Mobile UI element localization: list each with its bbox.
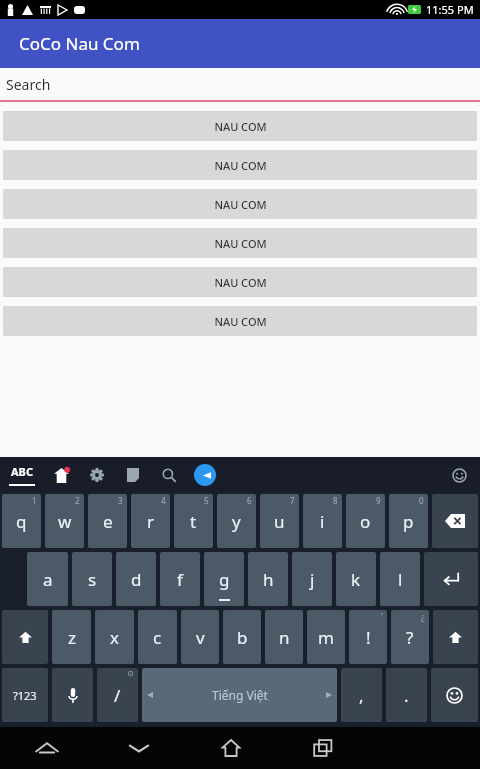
staticText: 3	[118, 495, 123, 506]
staticText: a	[43, 568, 53, 591]
button[interactable]: j	[292, 552, 332, 606]
button[interactable]: o	[346, 494, 385, 548]
button[interactable]: Backspace	[432, 494, 478, 548]
button[interactable]: Space	[142, 668, 337, 722]
staticText: NAU COM	[214, 275, 267, 290]
staticText: ABC	[11, 464, 33, 479]
staticText: NAU COM	[214, 197, 267, 212]
button[interactable]: i	[303, 494, 342, 548]
staticText: NAU COM	[214, 314, 267, 329]
button[interactable]: Voice input	[52, 668, 93, 722]
button[interactable]: s	[72, 552, 112, 606]
staticText: j	[310, 568, 315, 591]
button[interactable]: Enter	[424, 552, 478, 606]
staticText: c	[153, 626, 162, 649]
staticText: p	[403, 510, 414, 533]
button[interactable]: l	[380, 552, 420, 606]
staticText: i	[320, 510, 325, 533]
button[interactable]: a	[27, 552, 68, 606]
button[interactable]: q	[2, 494, 41, 548]
staticText: 1	[32, 495, 37, 506]
staticText: ¿	[421, 611, 425, 622]
button[interactable]: Home	[185, 727, 277, 769]
button[interactable]: c	[138, 610, 177, 664]
button[interactable]: n	[265, 610, 303, 664]
staticText: m	[318, 626, 334, 649]
staticText: Tiếng Việt	[212, 687, 268, 703]
staticText: b	[237, 626, 248, 649]
staticText: !	[366, 626, 371, 649]
staticText: 9	[376, 495, 381, 506]
button[interactable]: h	[248, 552, 288, 606]
staticText: .	[404, 684, 409, 707]
button[interactable]: Recent apps	[277, 727, 369, 769]
staticText: y	[232, 510, 241, 533]
staticText: x	[110, 626, 119, 649]
staticText: s	[88, 568, 97, 591]
staticText: t	[190, 510, 197, 533]
button[interactable]: Clipboard	[122, 464, 144, 486]
button[interactable]: Emoji	[448, 464, 470, 486]
staticText: '	[381, 611, 383, 622]
staticText: v	[196, 626, 205, 649]
staticText: 5	[204, 495, 209, 506]
button[interactable]: Voice typing	[194, 464, 216, 486]
staticText: r	[147, 510, 155, 533]
button[interactable]: g	[204, 552, 244, 606]
staticText: 0	[419, 495, 424, 506]
button[interactable]: NAU COM	[3, 228, 477, 258]
button[interactable]: d	[116, 552, 156, 606]
staticText: e	[103, 510, 113, 533]
staticText: n	[279, 626, 290, 649]
staticText: f	[177, 568, 183, 591]
button[interactable]: Shift	[2, 610, 48, 664]
button[interactable]: !	[349, 610, 387, 664]
button[interactable]: f	[160, 552, 200, 606]
button[interactable]: Search	[158, 464, 180, 486]
button[interactable]: NAU COM	[3, 189, 477, 219]
button[interactable]: w	[45, 494, 84, 548]
button[interactable]: x	[95, 610, 134, 664]
button[interactable]: t	[174, 494, 213, 548]
staticText: CoCo Nau Com	[19, 32, 140, 55]
button[interactable]: /	[97, 668, 138, 722]
staticText: g	[219, 568, 230, 591]
button[interactable]: NAU COM	[3, 306, 477, 336]
button[interactable]: NAU COM	[3, 150, 477, 180]
staticText: 8	[333, 495, 338, 506]
button[interactable]: ,	[341, 668, 382, 722]
staticText: l	[398, 568, 403, 591]
button[interactable]: u	[260, 494, 299, 548]
button[interactable]: e	[88, 494, 127, 548]
button[interactable]: Menu	[0, 727, 93, 769]
staticText: w	[58, 510, 72, 533]
staticText: q	[16, 510, 27, 533]
button[interactable]: r	[131, 494, 170, 548]
button[interactable]: Shift	[433, 610, 478, 664]
button[interactable]: Emoji keyboard	[431, 668, 478, 722]
button[interactable]: ABC	[8, 457, 36, 492]
button[interactable]: z	[52, 610, 91, 664]
button[interactable]: Hide keyboard	[93, 727, 185, 769]
button[interactable]: Stickers	[50, 464, 72, 486]
staticText: 2	[75, 495, 80, 506]
button[interactable]: .	[386, 668, 427, 722]
button[interactable]: NAU COM	[3, 111, 477, 141]
button[interactable]: Search	[0, 68, 480, 100]
button[interactable]: k	[336, 552, 376, 606]
button[interactable]: NAU COM	[3, 267, 477, 297]
button[interactable]: ?	[391, 610, 429, 664]
staticText: k	[351, 568, 361, 591]
staticText: z	[68, 626, 76, 649]
button[interactable]: b	[223, 610, 261, 664]
button[interactable]: v	[181, 610, 219, 664]
staticText: o	[360, 510, 371, 533]
staticText: h	[263, 568, 274, 591]
button[interactable]: p	[389, 494, 428, 548]
button[interactable]: ?123	[2, 668, 48, 722]
button[interactable]: Settings	[86, 464, 108, 486]
button[interactable]: m	[307, 610, 345, 664]
staticText: 7	[290, 495, 295, 506]
button[interactable]: y	[217, 494, 256, 548]
staticText: 11:55 PM	[426, 2, 474, 17]
